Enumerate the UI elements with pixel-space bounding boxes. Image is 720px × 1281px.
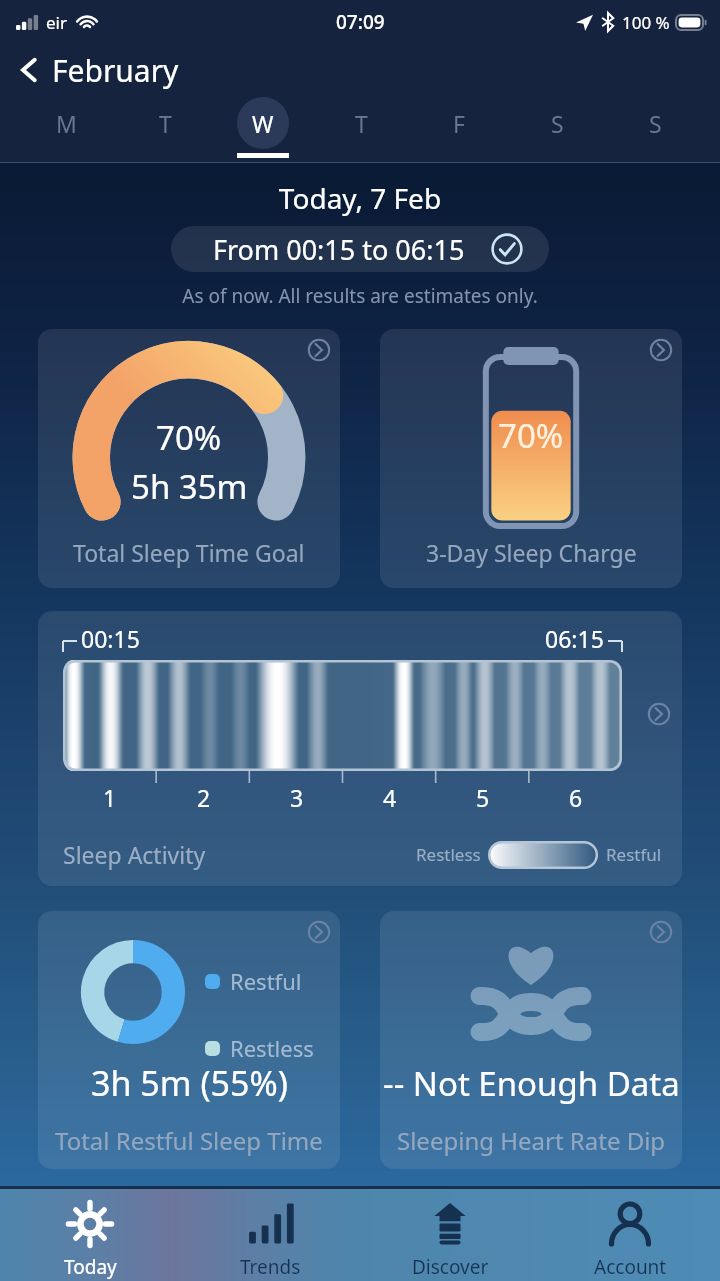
staticText: eir: [46, 11, 67, 34]
staticText: Restless: [416, 843, 481, 866]
staticText: 3: [290, 782, 304, 813]
button[interactable]: Open details: [304, 917, 334, 947]
staticText: 70%: [156, 415, 222, 460]
button[interactable]: Today: [0, 1186, 180, 1281]
staticText: 07:09: [336, 9, 385, 35]
button[interactable]: Open details: [38, 611, 682, 886]
button[interactable]: S: [508, 96, 606, 162]
button[interactable]: T: [115, 96, 214, 162]
staticText: Discover: [412, 1254, 489, 1280]
staticText: 70%: [498, 413, 564, 458]
staticText: 5h 35m: [131, 464, 248, 509]
button[interactable]: Account: [540, 1186, 720, 1281]
button[interactable]: T: [312, 96, 410, 162]
staticText: 5: [476, 782, 490, 813]
button[interactable]: S: [606, 96, 704, 162]
staticText: February: [52, 50, 179, 91]
staticText: Sleep Activity: [63, 839, 206, 870]
staticText: Restful: [606, 843, 662, 866]
staticText: Today, 7 Feb: [0, 179, 720, 217]
staticText: Account: [594, 1254, 667, 1280]
button[interactable]: Open details: [38, 911, 340, 1169]
staticText: 1: [103, 782, 117, 813]
button[interactable]: Open details: [646, 917, 676, 947]
staticText: As of now. All results are estimates onl…: [0, 283, 720, 309]
button[interactable]: Open details: [380, 911, 682, 1169]
staticText: 00:15: [81, 623, 140, 654]
staticText: -- Not Enough Data: [383, 1061, 680, 1106]
button[interactable]: F: [410, 96, 508, 162]
staticText: Total Sleep Time Goal: [73, 537, 305, 568]
button[interactable]: Open details: [646, 335, 676, 365]
staticText: 3-Day Sleep Charge: [426, 537, 637, 568]
button[interactable]: Trends: [180, 1186, 360, 1281]
staticText: Restless: [230, 1033, 314, 1063]
button[interactable]: M: [16, 96, 115, 162]
button[interactable]: Open details: [380, 329, 682, 588]
staticText: T: [355, 108, 368, 139]
staticText: 2: [197, 782, 211, 813]
staticText: Sleeping Heart Rate Dip: [397, 1124, 666, 1157]
button[interactable]: Discover: [360, 1186, 540, 1281]
button[interactable]: Open details: [38, 329, 340, 588]
staticText: Trends: [240, 1254, 301, 1280]
button[interactable]: W: [214, 96, 312, 162]
staticText: From 00:15 to 06:15: [213, 231, 465, 268]
button[interactable]: From 00:15 to 06:15: [171, 226, 549, 272]
staticText: Restful: [230, 966, 302, 996]
staticText: Total Restful Sleep Time: [55, 1124, 323, 1157]
button[interactable]: Open details: [644, 699, 674, 729]
staticText: 06:15: [545, 623, 604, 654]
staticText: W: [252, 108, 274, 139]
staticText: Today: [64, 1254, 117, 1280]
staticText: 4: [383, 782, 397, 813]
button[interactable]: Open details: [304, 335, 334, 365]
staticText: S: [551, 108, 564, 139]
staticText: 3h 5m (55%): [91, 1060, 288, 1106]
staticText: T: [159, 108, 172, 139]
staticText: 100 %: [622, 11, 670, 34]
staticText: S: [649, 108, 662, 139]
staticText: M: [56, 108, 77, 139]
button[interactable]: Back: [8, 49, 50, 91]
staticText: 6: [569, 782, 583, 813]
staticText: F: [453, 108, 465, 139]
